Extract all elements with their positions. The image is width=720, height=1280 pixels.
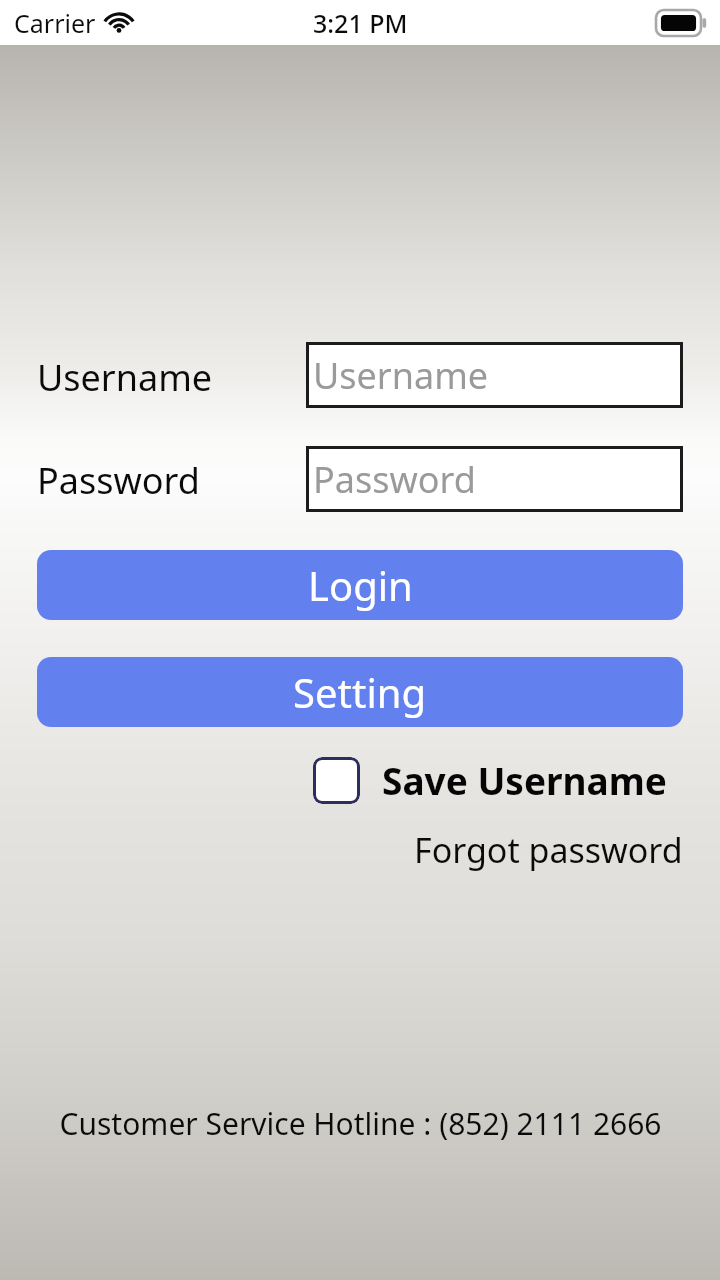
staticText: Setting	[293, 665, 427, 719]
button[interactable]: Save Username	[313, 755, 667, 805]
button[interactable]: Forgot password	[0, 827, 683, 873]
staticText: Login	[308, 558, 413, 612]
button[interactable]: Username	[306, 342, 683, 408]
button[interactable]: Setting	[37, 657, 683, 727]
staticText: Password	[37, 456, 200, 505]
staticText: 3:21 PM	[313, 6, 408, 40]
staticText: Forgot password	[414, 827, 683, 873]
button[interactable]: Password	[306, 446, 683, 512]
staticText: Save Username	[382, 755, 667, 805]
staticText: Username	[37, 353, 213, 402]
staticText: Username	[313, 351, 489, 400]
staticText: Password	[313, 455, 476, 504]
staticText: Customer Service Hotline : (852) 2111 26…	[59, 1103, 662, 1144]
staticText: Carrier	[14, 6, 96, 40]
button[interactable]: Login	[37, 550, 683, 620]
